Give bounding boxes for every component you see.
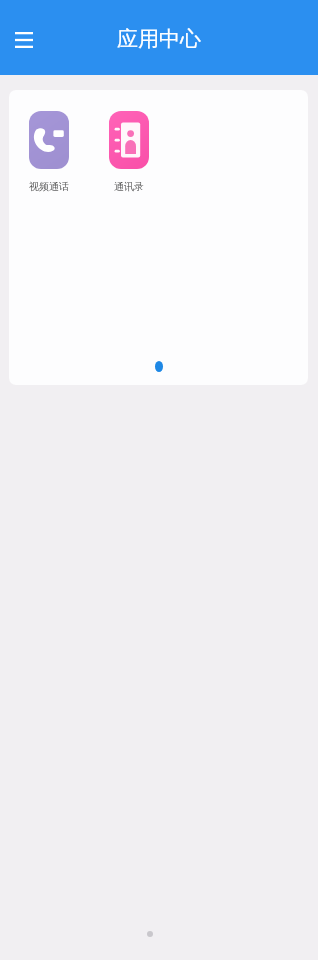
button[interactable]: 通讯录 [89,111,169,193]
button[interactable]: 视频通话 [9,111,89,193]
staticText: 视频通话 [9,180,89,193]
staticText: 通讯录 [89,180,169,193]
button[interactable]: Menu [2,18,46,62]
staticText: 应用中心 [117,26,201,52]
